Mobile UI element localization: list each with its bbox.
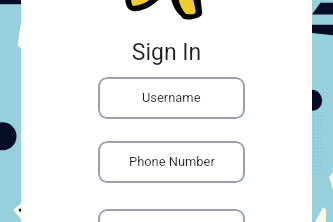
staticText: Phone Number (129, 154, 215, 169)
button[interactable]: Username (98, 77, 245, 119)
staticText: Username (142, 90, 201, 105)
button[interactable] (98, 209, 245, 222)
button[interactable]: Phone Number (98, 141, 245, 183)
staticText: Sign In (0, 39, 333, 222)
